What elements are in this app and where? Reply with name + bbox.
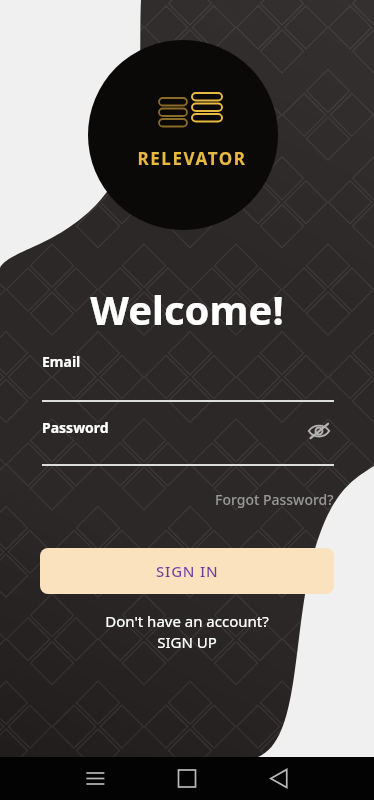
staticText: SIGN UP	[157, 632, 217, 652]
button[interactable]: SIGN IN	[40, 548, 334, 594]
staticText: Email	[42, 352, 81, 371]
staticText: Welcome!	[0, 282, 374, 336]
button[interactable]: Email	[42, 352, 334, 402]
button[interactable]: Toggle password visibility	[304, 416, 334, 446]
staticText: Forgot Password?	[215, 490, 334, 509]
staticText: Password	[42, 418, 109, 437]
staticText: SIGN IN	[156, 561, 219, 581]
staticText: RELEVATOR	[10, 147, 374, 170]
button[interactable]: Password	[42, 416, 334, 466]
staticText: Don't have an account?	[0, 611, 374, 631]
button[interactable]: Forgot Password?	[190, 486, 334, 512]
button[interactable]: SIGN UP	[0, 630, 374, 654]
